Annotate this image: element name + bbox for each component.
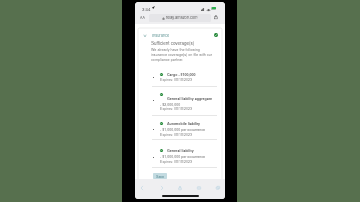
staticText: - $1,000,000 per occurrence [160, 154, 206, 159]
staticText: We already have the following insurance … [151, 47, 213, 62]
button[interactable]: Share [176, 182, 184, 193]
staticText: Cargo - $100,000 [167, 72, 196, 77]
staticText: Insurance [152, 33, 170, 39]
staticText: Expires: 08/18/2023 [160, 132, 192, 137]
staticText: Sufficient coverage(s) [151, 40, 195, 46]
staticText: General liability [167, 148, 194, 153]
staticText: Automobile liability [167, 121, 201, 126]
staticText: Expires: 08/18/2023 [160, 77, 192, 82]
staticText: 3:44 [142, 6, 151, 12]
button[interactable]: AA [140, 15, 145, 20]
staticText: Save [156, 174, 165, 179]
button[interactable]: Forward [158, 182, 166, 193]
staticText: relay.amazon.com [166, 15, 198, 21]
staticText: General liability aggregate [167, 96, 212, 101]
button[interactable]: Share [214, 15, 218, 19]
button[interactable]: Save [153, 173, 167, 179]
staticText: Expires: 08/18/2023 [160, 106, 192, 111]
button[interactable]: Bookmarks [195, 182, 203, 193]
button[interactable]: Back [138, 182, 146, 193]
staticText: Expires: 08/18/2023 [160, 159, 192, 164]
button[interactable]: Insurance [142, 32, 218, 41]
button[interactable]: Tabs [214, 182, 222, 193]
staticText: - $2,000,000 [160, 102, 181, 107]
button[interactable] [149, 14, 211, 22]
staticText: - $1,000,000 per occurrence [160, 127, 206, 132]
